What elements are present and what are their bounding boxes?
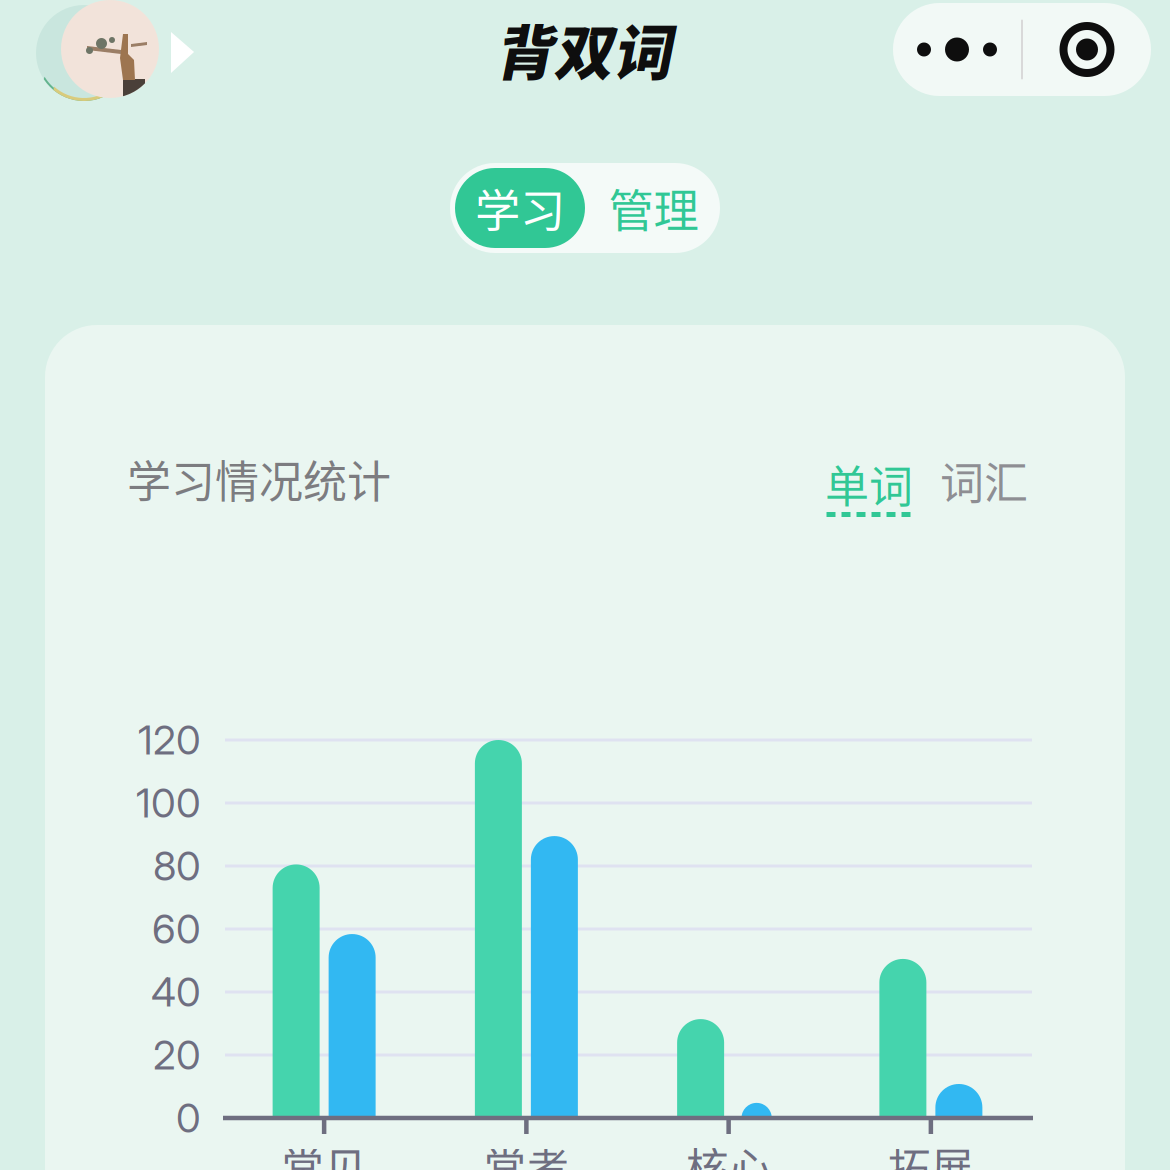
button[interactable]: Close [1023,3,1151,96]
staticText: 120 [138,716,201,764]
button[interactable]: More [893,3,1021,96]
staticText: 80 [153,842,201,890]
staticText: 核心 [686,1135,772,1170]
staticText: 100 [136,779,201,827]
staticText: 20 [153,1031,201,1079]
staticText: 学习情况统计 [127,447,391,511]
button[interactable]: 管理 [592,168,715,248]
staticText: 背双词 [494,6,671,91]
staticText: 常见 [281,1135,367,1170]
button[interactable]: Play introduction [31,0,231,116]
staticText: 40 [151,968,201,1016]
button[interactable]: 词汇 [904,452,1064,508]
staticText: 词汇 [940,448,1028,512]
staticText: 0 [176,1094,201,1142]
staticText: 常考 [483,1135,569,1170]
staticText: 学习 [475,175,565,241]
staticText: 拓展 [888,1135,974,1170]
staticText: 60 [152,905,201,953]
button[interactable]: 单词 [789,446,949,526]
button[interactable]: 学习 [455,168,585,248]
staticText: 管理 [608,175,698,241]
staticText: 单词 [825,452,913,515]
